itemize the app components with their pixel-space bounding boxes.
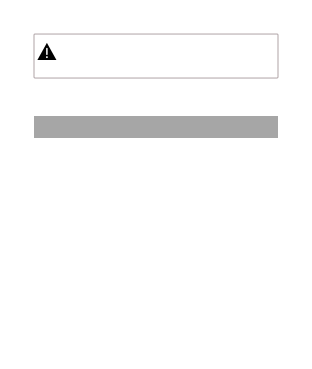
button[interactable]: Warning xyxy=(34,34,278,78)
